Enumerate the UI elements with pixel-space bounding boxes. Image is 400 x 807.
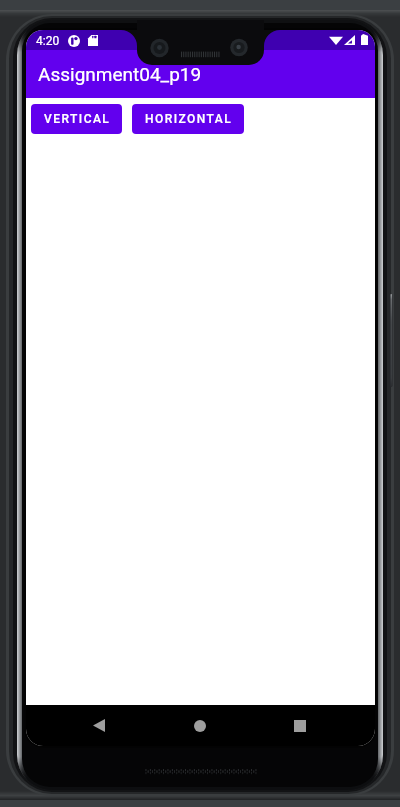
staticText: HORIZONTAL [145, 112, 233, 126]
staticText: Assignment04_p19 [38, 63, 202, 85]
staticText: 4:20 [36, 34, 60, 48]
button[interactable]: Home [180, 705, 220, 746]
button[interactable]: HORIZONTAL [132, 104, 244, 134]
button[interactable]: Recents [280, 705, 320, 746]
button[interactable]: VERTICAL [31, 104, 122, 134]
staticText: VERTICAL [44, 112, 111, 126]
button[interactable]: Back [79, 705, 119, 746]
